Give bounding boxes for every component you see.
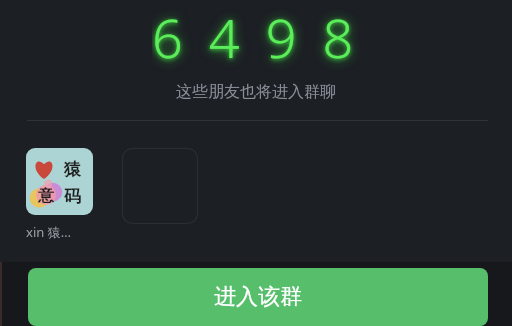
- staticText: 6 4 9 8: [152, 1, 360, 73]
- button[interactable]: 添加成员: [122, 148, 198, 224]
- staticText: 6 4 9 8: [152, 0, 360, 72]
- staticText: 码: [64, 186, 81, 207]
- staticText: xin 猿…: [26, 223, 71, 241]
- staticText: 这些朋友也将进入群聊: [176, 82, 336, 102]
- staticText: 意: [38, 186, 54, 206]
- staticText: 进入该群: [214, 283, 302, 311]
- button[interactable]: 进入该群: [28, 268, 488, 326]
- staticText: 6 4 9 8: [152, 1, 360, 73]
- staticText: 猿: [64, 159, 81, 180]
- button[interactable]: 猿: [26, 148, 93, 241]
